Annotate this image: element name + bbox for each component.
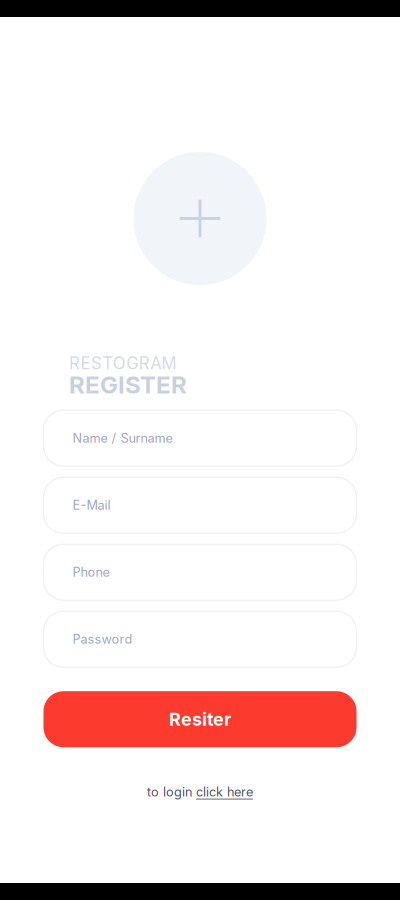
- staticText: REGISTER: [69, 370, 187, 399]
- staticText: E-Mail: [72, 497, 110, 513]
- staticText: click here: [196, 784, 253, 799]
- button[interactable]: Name / Surname: [43, 410, 356, 466]
- button[interactable]: Resiter: [43, 691, 356, 747]
- button[interactable]: E-Mail: [43, 477, 356, 533]
- staticText: Password: [72, 631, 132, 647]
- button[interactable]: Password: [43, 611, 356, 667]
- button[interactable]: to login: [147, 784, 253, 799]
- button[interactable]: Phone: [43, 544, 356, 600]
- button[interactable]: Add photo: [133, 152, 266, 285]
- staticText: Phone: [72, 564, 109, 580]
- staticText: to login: [147, 784, 192, 799]
- staticText: RESTOGRAM: [69, 353, 177, 373]
- staticText: Name / Surname: [72, 430, 172, 446]
- staticText: Resiter: [169, 708, 231, 730]
